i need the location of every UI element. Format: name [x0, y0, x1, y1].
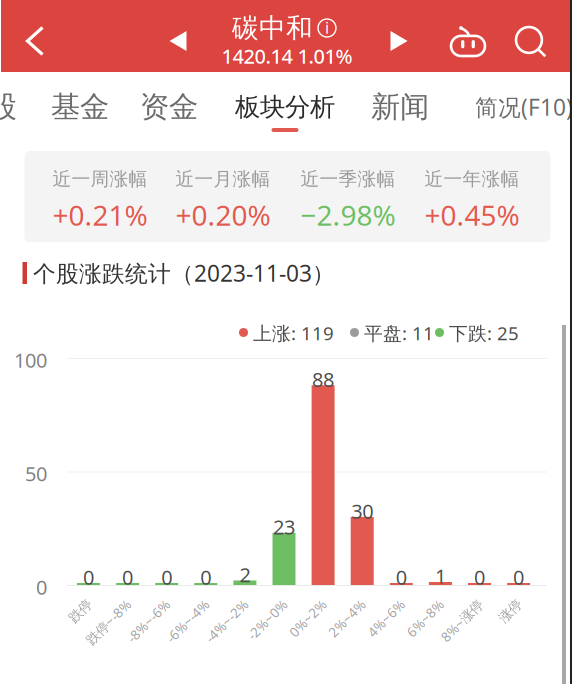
- staticText: 近一周涨幅: [52, 167, 147, 190]
- staticText: 4%~6%: [351, 595, 397, 613]
- button[interactable]: Search: [506, 17, 560, 71]
- staticText: 6%~8%: [390, 595, 436, 613]
- button[interactable]: AI assistant: [441, 14, 495, 68]
- staticText: 板块分析: [235, 91, 335, 122]
- staticText: -4%~-2%: [187, 595, 241, 613]
- staticText: 30: [351, 498, 373, 524]
- staticText: 碳中和: [232, 12, 313, 44]
- staticText: +0.45%: [424, 196, 519, 234]
- staticText: -2%~0%: [230, 595, 280, 613]
- staticText: 0%~2%: [273, 595, 319, 613]
- staticText: 1420.14 1.01%: [221, 43, 352, 69]
- staticText: 0: [200, 564, 211, 590]
- staticText: 个股涨跌统计（2023-11-03）: [33, 258, 335, 288]
- button[interactable]: 资金: [129, 72, 209, 140]
- staticText: 0: [122, 564, 133, 590]
- staticText: −2.98%: [300, 196, 395, 234]
- staticText: 跌停~-8%: [67, 595, 124, 613]
- staticText: 0: [161, 564, 172, 590]
- staticText: 8%~涨停: [422, 595, 475, 613]
- staticText: 0: [474, 564, 485, 590]
- staticText: +0.20%: [175, 196, 270, 234]
- staticText: -6%~-4%: [148, 595, 202, 613]
- staticText: 50: [25, 460, 47, 487]
- staticText: 0: [36, 574, 47, 600]
- staticText: 0: [83, 564, 94, 590]
- staticText: -8%~-6%: [109, 595, 163, 613]
- staticText: 简况(F10): [475, 92, 572, 122]
- staticText: 资金: [140, 89, 198, 125]
- staticText: 新闻: [371, 89, 429, 125]
- staticText: 0: [396, 564, 407, 590]
- staticText: 涨停: [489, 596, 515, 612]
- button[interactable]: 板块分析: [226, 72, 344, 140]
- staticText: 跌停: [58, 596, 84, 612]
- staticText: 88: [312, 366, 334, 393]
- staticText: 0: [513, 564, 524, 590]
- button[interactable]: 基金: [40, 72, 120, 140]
- button[interactable]: 新闻: [360, 72, 440, 140]
- button[interactable]: Previous: [152, 15, 204, 67]
- staticText: +0.21%: [52, 196, 147, 234]
- staticText: 近一年涨幅: [424, 167, 519, 190]
- staticText: i: [325, 17, 329, 38]
- staticText: 近一月涨幅: [175, 167, 270, 190]
- staticText: 基金: [51, 89, 109, 125]
- button[interactable]: 简况(F10): [469, 72, 572, 140]
- staticText: 100: [14, 347, 47, 373]
- staticText: 近一季涨幅: [300, 167, 395, 190]
- staticText: 股: [0, 89, 16, 125]
- staticText: 2%~4%: [312, 595, 358, 613]
- button[interactable]: 股: [0, 72, 30, 140]
- staticText: 上涨: 119: [253, 321, 334, 345]
- staticText: 2: [239, 561, 250, 588]
- staticText: 平盘: 11: [364, 321, 434, 345]
- staticText: 23: [273, 513, 295, 540]
- staticText: 1: [435, 563, 446, 589]
- button[interactable]: Next: [373, 15, 425, 67]
- staticText: 下跌: 25: [449, 321, 519, 345]
- button[interactable]: Back: [7, 12, 63, 70]
